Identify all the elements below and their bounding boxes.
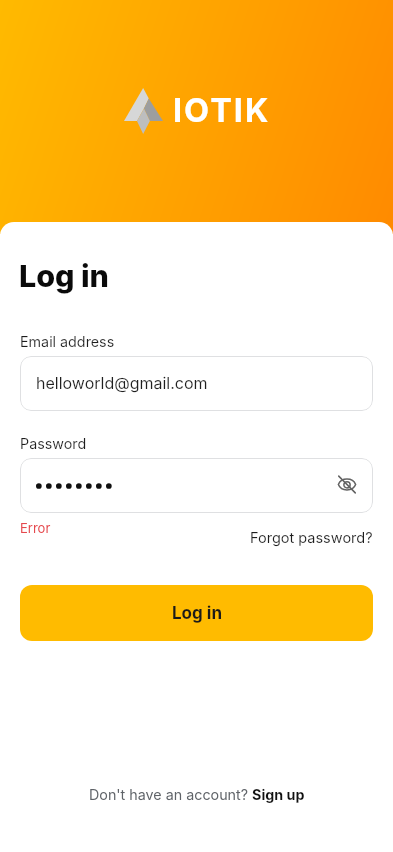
staticText: Log in bbox=[172, 603, 222, 624]
button[interactable]: Show password bbox=[20, 458, 373, 513]
staticText: Password bbox=[20, 435, 87, 452]
staticText: IOTIK bbox=[173, 91, 271, 130]
staticText: Error bbox=[20, 520, 51, 536]
staticText: Forgot password? bbox=[250, 529, 373, 547]
staticText: Log in bbox=[19, 257, 109, 294]
button[interactable]: Log in bbox=[20, 585, 373, 641]
staticText: helloworld@gmail.com bbox=[36, 373, 208, 392]
staticText: Email address bbox=[20, 333, 115, 350]
staticText: Don't have an account? Sign up bbox=[89, 786, 305, 803]
button[interactable]: Forgot password? bbox=[250, 529, 373, 547]
button[interactable]: Show password bbox=[334, 471, 360, 497]
button[interactable]: Don't have an account? Sign up bbox=[89, 786, 305, 803]
button[interactable]: helloworld@gmail.com bbox=[20, 356, 373, 411]
